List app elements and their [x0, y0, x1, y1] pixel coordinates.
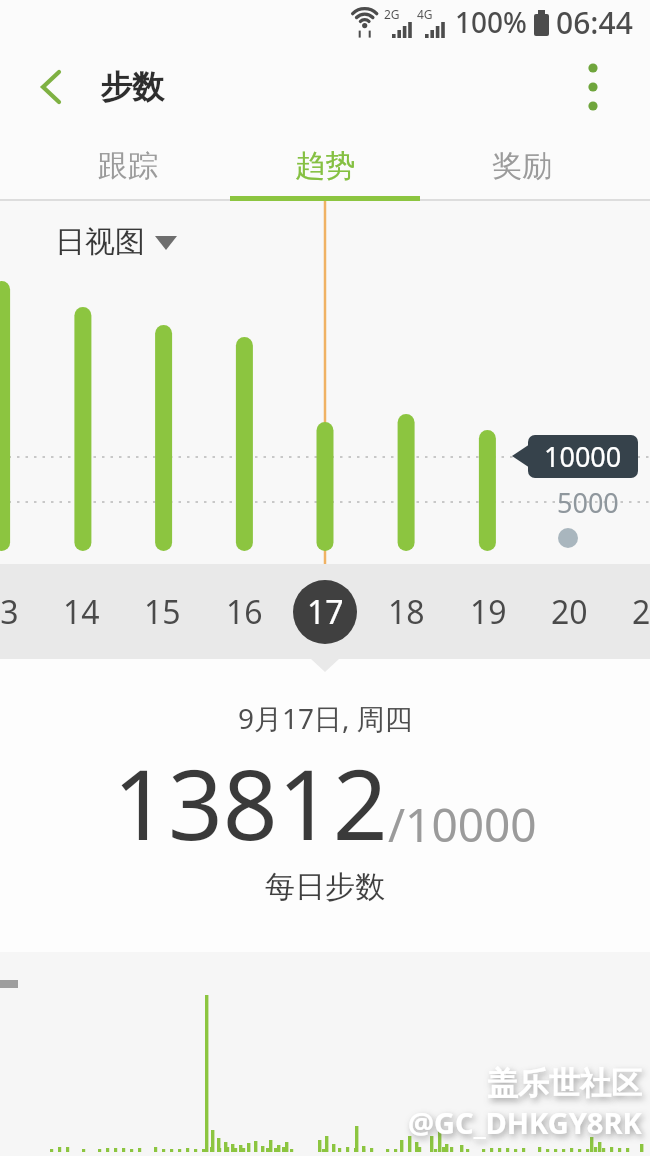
staticText: /10000	[388, 793, 537, 856]
staticText: 21	[632, 590, 650, 634]
staticText: @GC_DHKGY8RK	[408, 1103, 642, 1142]
staticText: 10000	[544, 438, 622, 475]
staticText: 趋势	[295, 147, 355, 185]
staticText: 2G	[384, 6, 400, 22]
staticText: 16	[226, 590, 263, 634]
button[interactable]: 15	[121, 564, 203, 659]
staticText: 13812	[113, 737, 388, 868]
button[interactable]	[16, 44, 86, 130]
button[interactable]: 19	[447, 564, 529, 659]
staticText: 100%	[455, 3, 527, 41]
button[interactable]: 18	[365, 564, 447, 659]
staticText: 日视图	[55, 223, 145, 261]
button[interactable]: 趋势	[226, 130, 423, 201]
button[interactable]: 17	[293, 580, 357, 644]
staticText: 06:44	[556, 2, 633, 43]
staticText: 9月17日, 周四	[238, 699, 413, 737]
button[interactable]: 14	[40, 564, 122, 659]
button[interactable]: 20	[528, 564, 610, 659]
staticText: 19	[470, 590, 507, 634]
button[interactable]: 21	[609, 564, 650, 659]
staticText: 5000	[557, 484, 619, 520]
staticText: 20	[551, 590, 588, 634]
button[interactable]: 13	[0, 564, 41, 659]
button[interactable]: 奖励	[423, 130, 620, 201]
staticText: 步数	[100, 67, 164, 107]
staticText: 盖乐世社区	[487, 1064, 642, 1103]
staticText: 13	[0, 590, 19, 634]
button[interactable]: 跟踪	[30, 130, 226, 201]
button[interactable]: 日视图	[55, 223, 177, 261]
staticText: 4G	[417, 6, 433, 22]
staticText: 14	[63, 590, 100, 634]
button[interactable]	[563, 44, 623, 130]
staticText: 18	[388, 590, 425, 634]
staticText: 15	[144, 590, 181, 634]
staticText: 奖励	[492, 147, 552, 185]
staticText: 跟踪	[98, 147, 158, 185]
staticText: 17	[307, 590, 344, 634]
staticText: 每日步数	[265, 868, 385, 906]
button[interactable]: 16	[203, 564, 285, 659]
